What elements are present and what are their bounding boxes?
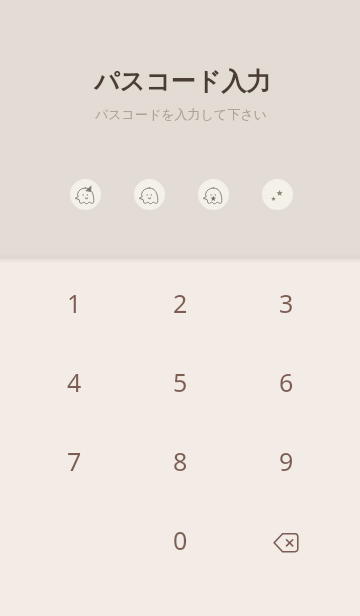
button[interactable]: 8 [127,430,233,492]
button[interactable]: 6 [233,351,339,413]
button[interactable]: 1 [21,272,127,334]
button[interactable]: 7 [21,430,127,492]
staticText: 4 [67,365,82,399]
staticText: パスコードを入力して下さい [95,106,267,122]
staticText: 9 [279,444,294,478]
staticText: 2 [173,286,188,320]
button[interactable]: 2 [127,272,233,334]
button[interactable]: Passcode digit 4, empty [262,179,293,210]
button[interactable]: 5 [127,351,233,413]
button[interactable]: 4 [21,351,127,413]
staticText: 1 [67,286,82,320]
button[interactable]: Passcode digit 2, entered [134,179,165,210]
button[interactable]: Passcode digit 1, entered [70,179,101,210]
button[interactable]: 9 [233,430,339,492]
button[interactable]: Passcode digit 3, entered [198,179,229,210]
staticText: 6 [279,365,294,399]
button[interactable]: 0 [127,509,233,571]
staticText: 0 [173,523,188,557]
button[interactable]: Delete [233,509,339,571]
button[interactable]: 3 [233,272,339,334]
staticText: 7 [67,444,82,478]
staticText: 8 [173,444,188,478]
staticText: 3 [279,286,294,320]
staticText: パスコード入力 [94,66,272,96]
staticText: 5 [173,365,188,399]
